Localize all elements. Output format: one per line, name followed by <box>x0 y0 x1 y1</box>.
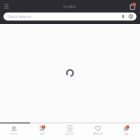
staticText: Quick Search... <box>7 14 33 19</box>
button[interactable]: Wishlist <box>84 122 112 140</box>
button[interactable]: Home <box>0 122 28 140</box>
staticText: myntra <box>62 4 75 9</box>
button[interactable]: 1 <box>112 122 140 140</box>
button[interactable]: Studio <box>56 122 84 140</box>
button[interactable]: Menu <box>2 0 11 12</box>
staticText: Fwd <box>39 132 44 135</box>
staticText: 1 <box>42 125 44 129</box>
staticText: Wishlist <box>93 132 103 135</box>
staticText: Studio <box>65 132 74 135</box>
staticText: Bag <box>123 132 128 135</box>
staticText: 1 <box>126 125 128 129</box>
staticText: Home <box>10 132 18 135</box>
button[interactable]: 1 <box>28 122 56 140</box>
button[interactable]: Bag <box>127 1 138 12</box>
